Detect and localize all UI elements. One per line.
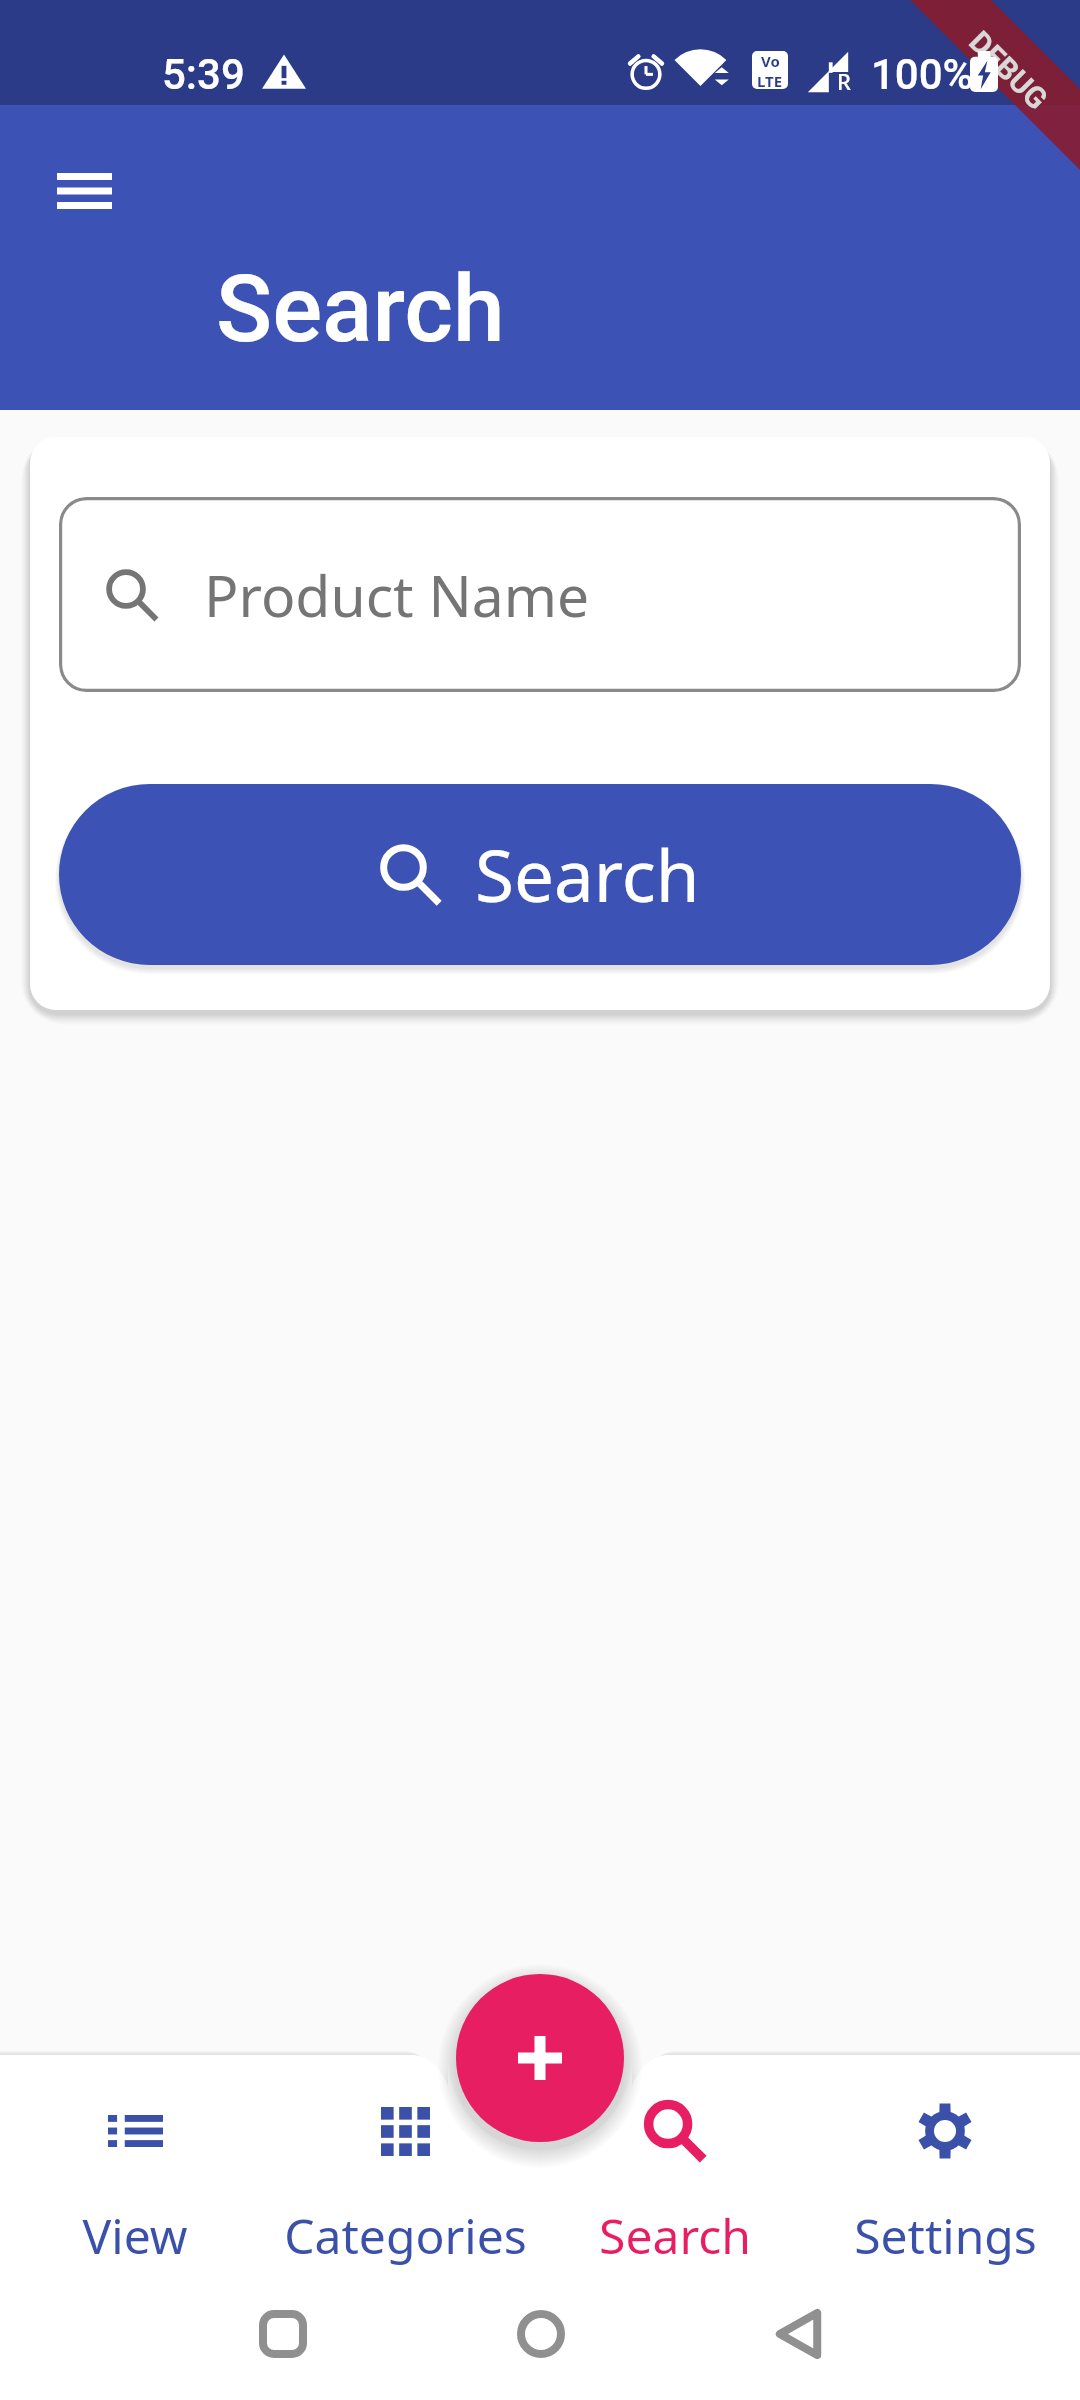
- button[interactable]: Search: [59, 784, 1021, 965]
- button[interactable]: Settings: [810, 2100, 1080, 2268]
- staticText: Search: [599, 2203, 751, 2268]
- button[interactable]: Home: [501, 2294, 581, 2374]
- button[interactable]: Back: [759, 2294, 839, 2374]
- button[interactable]: Recent apps: [243, 2294, 323, 2374]
- button[interactable]: Categories: [270, 2100, 540, 2268]
- button[interactable]: Open navigation menu: [30, 137, 138, 245]
- staticText: Search: [216, 255, 505, 364]
- staticText: 5:39: [162, 50, 245, 99]
- staticText: View: [82, 2203, 188, 2268]
- staticText: Search: [475, 826, 700, 923]
- staticText: Vo: [761, 51, 780, 71]
- staticText: LTE: [757, 71, 783, 89]
- staticText: Product Name: [204, 556, 590, 634]
- staticText: DEBUG: [962, 24, 1055, 117]
- button[interactable]: Add: [456, 1974, 624, 2142]
- staticText: 100%: [871, 50, 974, 99]
- button[interactable]: View: [0, 2100, 270, 2268]
- button[interactable]: Search: [540, 2100, 810, 2268]
- staticText: Settings: [854, 2203, 1037, 2268]
- staticText: Categories: [284, 2203, 527, 2268]
- button[interactable]: Product Name: [59, 497, 1021, 692]
- staticText: R: [837, 66, 851, 96]
